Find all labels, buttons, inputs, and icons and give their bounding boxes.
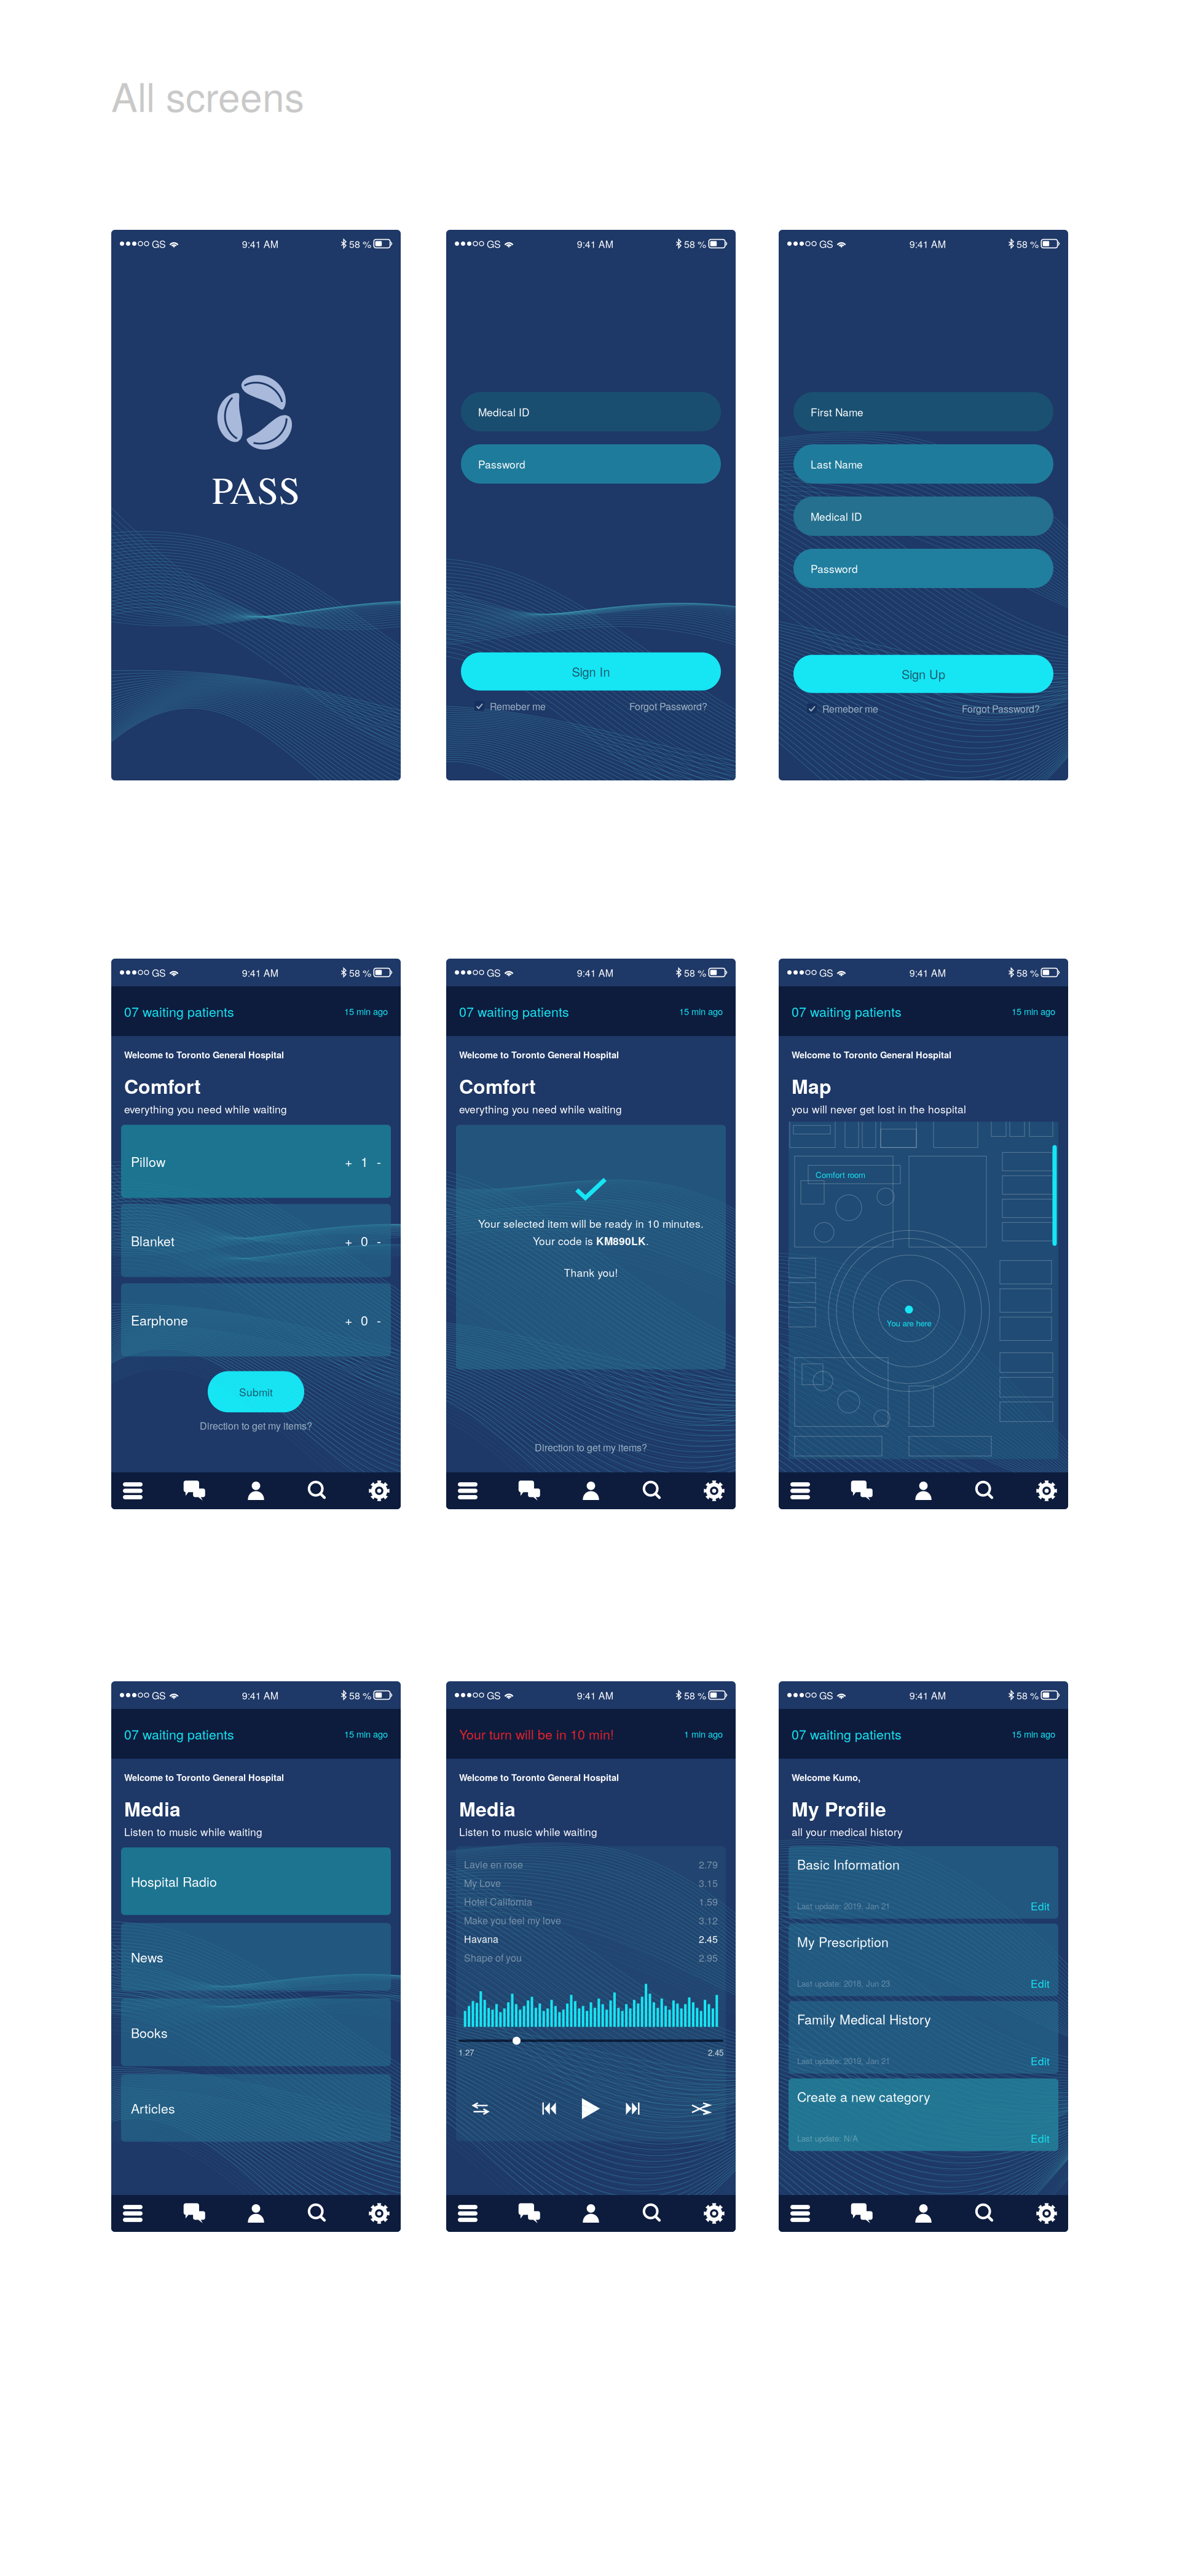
button[interactable]: Search	[641, 1472, 664, 1509]
button[interactable]: Hospital Radio	[121, 1847, 391, 1915]
staticText: Comfort	[459, 1072, 536, 1099]
button[interactable]: Next	[619, 2097, 646, 2120]
button[interactable]: Profile	[579, 2195, 603, 2232]
staticText: Hospital Radio	[131, 1872, 217, 1890]
button[interactable]: Settings	[368, 1472, 391, 1509]
button[interactable]: Menu	[456, 1472, 479, 1509]
staticText: My Love	[464, 1876, 501, 1890]
staticText: PASS	[212, 463, 300, 515]
button[interactable]: Menu	[456, 2195, 479, 2232]
button[interactable]: Messages	[183, 1472, 206, 1509]
button[interactable]: Menu	[121, 1472, 144, 1509]
staticText: Create a new category	[797, 2087, 930, 2105]
button[interactable]: Play	[577, 2097, 604, 2120]
staticText: 9:41 AM	[577, 237, 613, 250]
button[interactable]: Shuffle	[688, 2097, 715, 2120]
button[interactable]: Forgot Password?	[629, 699, 707, 713]
button[interactable]: Submit	[208, 1371, 304, 1412]
staticText: 58 %	[684, 1688, 706, 1702]
button[interactable]: Previous	[536, 2097, 563, 2120]
button[interactable]: Family Medical History	[789, 2001, 1058, 2074]
button[interactable]: Basic Information	[789, 1846, 1058, 1919]
button[interactable]: Profile	[912, 1472, 935, 1509]
button[interactable]: Messages	[850, 1472, 873, 1509]
button[interactable]: Direction to get my items?	[535, 1440, 647, 1454]
button[interactable]: Blanket	[121, 1204, 391, 1277]
button[interactable]: Books	[121, 1999, 391, 2066]
button[interactable]: Menu	[789, 2195, 812, 2232]
button[interactable]: Settings	[368, 2195, 391, 2232]
staticText: Remeber me	[822, 702, 878, 715]
staticText: Welcome to Toronto General Hospital	[459, 1048, 619, 1061]
button[interactable]: Remeber me	[474, 699, 546, 713]
staticText: 1 min ago	[684, 1728, 723, 1740]
staticText: Direction to get my items?	[535, 1440, 647, 1454]
button[interactable]: Earphone	[121, 1283, 391, 1356]
button[interactable]: First Name	[793, 392, 1053, 431]
staticText: Media	[459, 1795, 516, 1822]
button[interactable]: Pillow	[121, 1125, 391, 1198]
button[interactable]: Repeat	[467, 2097, 494, 2120]
button[interactable]: Forgot Password?	[962, 702, 1040, 715]
button[interactable]: Search	[973, 1472, 997, 1509]
button[interactable]: Direction to get my items?	[200, 1419, 312, 1432]
staticText: 07 waiting patients	[792, 1002, 902, 1020]
staticText: 58 %	[684, 237, 706, 250]
button[interactable]: Settings	[702, 1472, 726, 1509]
button[interactable]: News	[121, 1923, 391, 1991]
button[interactable]: Messages	[183, 2195, 206, 2232]
button[interactable]: Medical ID	[461, 392, 721, 431]
staticText: GS	[152, 966, 166, 979]
staticText: First Name	[811, 404, 863, 419]
staticText: GS	[819, 966, 833, 979]
staticText: Map	[792, 1072, 832, 1099]
staticText: 07 waiting patients	[124, 1002, 234, 1020]
button[interactable]: Search	[973, 2195, 997, 2232]
staticText: 07 waiting patients	[459, 1002, 569, 1020]
staticText: My Prescription	[797, 1932, 889, 1951]
button[interactable]: Sign Up	[793, 655, 1053, 693]
staticText: News	[131, 1948, 163, 1966]
button[interactable]: Remeber me	[807, 702, 878, 715]
button[interactable]: Medical ID	[793, 497, 1053, 536]
button[interactable]: Profile	[244, 1472, 268, 1509]
button[interactable]: Password	[461, 444, 721, 484]
staticText: Welcome to Toronto General Hospital	[124, 1048, 284, 1061]
button[interactable]: Messages	[518, 1472, 541, 1509]
staticText: 1	[361, 1152, 368, 1171]
staticText: 58 %	[349, 1688, 371, 1702]
staticText: 9:41 AM	[242, 1688, 278, 1702]
staticText: Sign Up	[902, 665, 945, 682]
button[interactable]: Profile	[579, 1472, 603, 1509]
button[interactable]: Menu	[789, 1472, 812, 1509]
button[interactable]: Profile	[912, 2195, 935, 2232]
button[interactable]: Messages	[850, 2195, 873, 2232]
button[interactable]: Settings	[1035, 1472, 1058, 1509]
button[interactable]: Settings	[1035, 2195, 1058, 2232]
button[interactable]: Search	[306, 2195, 329, 2232]
staticText: 58 %	[1017, 237, 1039, 250]
button[interactable]: Articles	[121, 2074, 391, 2142]
staticText: 0	[361, 1231, 368, 1250]
staticText: Medical ID	[478, 404, 530, 419]
staticText: 15 min ago	[679, 1005, 723, 1017]
button[interactable]: Password	[793, 549, 1053, 588]
button[interactable]: Sign In	[461, 652, 721, 691]
staticText: Media	[124, 1795, 181, 1822]
staticText: 9:41 AM	[577, 1688, 613, 1702]
button[interactable]: Create a new category	[789, 2078, 1058, 2151]
button[interactable]: Settings	[702, 2195, 726, 2232]
button[interactable]: Search	[641, 2195, 664, 2232]
staticText: all your medical history	[792, 1824, 903, 1839]
button[interactable]: Search	[306, 1472, 329, 1509]
button[interactable]: Last Name	[793, 444, 1053, 484]
button[interactable]: Messages	[518, 2195, 541, 2232]
button[interactable]: My Prescription	[789, 1924, 1058, 1996]
staticText: +	[345, 1311, 352, 1329]
button[interactable]: Profile	[244, 2195, 268, 2232]
staticText: Your code is KM890LK.	[533, 1233, 649, 1248]
button[interactable]: Menu	[121, 2195, 144, 2232]
staticText: 3.15	[699, 1876, 718, 1890]
staticText: Make you feel my love	[464, 1913, 561, 1927]
staticText: Sign In	[572, 663, 610, 680]
